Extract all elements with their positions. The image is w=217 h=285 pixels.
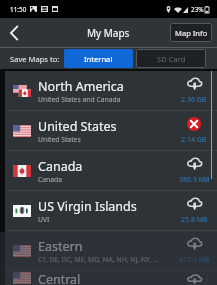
- staticText: Internal: [84, 54, 113, 64]
- button[interactable]: Download map: [184, 234, 204, 254]
- staticText: Eastern: [38, 238, 83, 255]
- staticText: Canada: [38, 175, 63, 184]
- staticText: SD Card: [157, 54, 186, 64]
- button[interactable]: Internal: [64, 49, 133, 68]
- staticText: United States and Canada: [38, 95, 121, 104]
- button[interactable]: Delete download: [184, 114, 204, 134]
- button[interactable]: United States: [5, 111, 217, 151]
- staticText: Canada: [38, 158, 83, 175]
- staticText: 2.14 GB: [181, 135, 207, 145]
- staticText: CT, DE, DC, ME, MD, MA, NH, NJ, NY, ...: [38, 255, 159, 264]
- staticText: Save Maps to:: [10, 54, 60, 64]
- staticText: 25.8 MB: [181, 215, 208, 225]
- button[interactable]: Download map: [184, 274, 204, 285]
- staticText: Central: [38, 271, 81, 285]
- staticText: My Maps: [87, 26, 130, 40]
- staticText: North America: [38, 78, 124, 95]
- button[interactable]: Download map: [184, 74, 204, 94]
- button[interactable]: Canada: [5, 151, 217, 191]
- staticText: 477.3 MB: [179, 255, 210, 265]
- button[interactable]: Central: [5, 271, 217, 285]
- button[interactable]: Eastern: [5, 231, 217, 271]
- staticText: 23%: [191, 5, 204, 14]
- button[interactable]: Map Info: [170, 23, 212, 42]
- staticText: US Virgin Islands: [38, 198, 137, 215]
- staticText: United States: [38, 118, 117, 135]
- button[interactable]: Download map: [184, 194, 204, 214]
- staticText: 11:50: [10, 5, 27, 14]
- staticText: 386.9 MB: [179, 175, 210, 185]
- button[interactable]: Download map: [184, 154, 204, 174]
- button[interactable]: SD Card: [136, 49, 206, 68]
- staticText: United States: [38, 135, 81, 144]
- button[interactable]: Back: [0, 18, 28, 47]
- staticText: Map Info: [175, 28, 208, 38]
- button[interactable]: North America: [5, 71, 217, 111]
- staticText: UVI: [38, 215, 50, 224]
- staticText: 2.36 GB: [181, 95, 207, 105]
- button[interactable]: US Virgin Islands: [5, 191, 217, 231]
